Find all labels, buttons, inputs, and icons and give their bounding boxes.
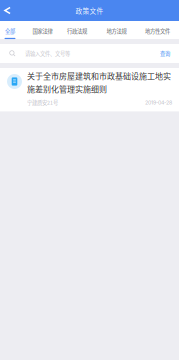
staticText: 请输入文件、文号等 bbox=[25, 50, 70, 57]
button[interactable]: 查询 bbox=[156, 44, 174, 63]
button[interactable]: 地方法规 bbox=[89, 21, 144, 39]
button[interactable]: 关于全市房屋建筑和市政基础设施工地实 bbox=[0, 68, 179, 111]
staticText: 国家法律 bbox=[32, 27, 52, 35]
button[interactable]: Back bbox=[0, 0, 15, 21]
staticText: 地方法规 bbox=[106, 27, 126, 35]
staticText: 2019-04-28 bbox=[145, 99, 172, 106]
staticText: 地方性文件 bbox=[145, 27, 170, 35]
button[interactable]: 地方性文件 bbox=[144, 21, 171, 39]
staticText: 查询 bbox=[160, 50, 170, 57]
button[interactable]: 国家法律 bbox=[20, 21, 65, 39]
staticText: 关于全市房屋建筑和市政基础设施工地实 bbox=[27, 70, 171, 82]
staticText: 宁建质安21号 bbox=[27, 99, 58, 106]
staticText: 行政法规 bbox=[67, 27, 87, 35]
staticText: 政策文件 bbox=[75, 6, 103, 15]
staticText: 全部 bbox=[5, 27, 15, 35]
button[interactable]: 全部 bbox=[0, 21, 20, 39]
button[interactable]: 行政法规 bbox=[65, 21, 89, 39]
staticText: 施差别化管理实施细则 bbox=[27, 83, 107, 95]
